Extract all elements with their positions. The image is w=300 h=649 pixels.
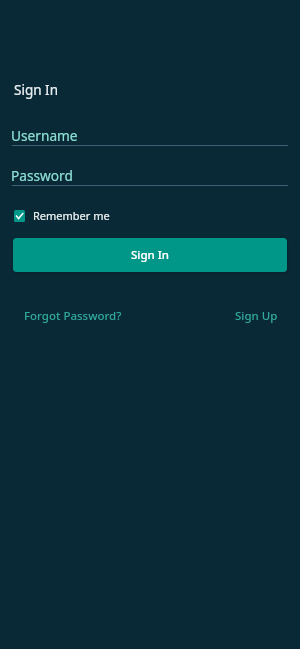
staticText: Sign In bbox=[131, 247, 170, 263]
staticText: Password bbox=[11, 166, 73, 185]
staticText: Remember me bbox=[33, 208, 110, 223]
button[interactable]: Sign Up bbox=[223, 304, 290, 328]
staticText: Forgot Password? bbox=[24, 308, 122, 324]
staticText: Sign In bbox=[14, 81, 58, 99]
staticText: Username bbox=[11, 126, 78, 145]
other: Remember me checkbox, checked bbox=[14, 210, 25, 222]
button[interactable]: Password bbox=[12, 165, 288, 186]
staticText: Sign Up bbox=[235, 308, 278, 324]
button[interactable]: Forgot Password? bbox=[12, 304, 134, 328]
button[interactable]: Remember me checkbox, checked bbox=[14, 208, 110, 223]
button[interactable]: Username bbox=[12, 125, 288, 146]
button[interactable]: Sign In bbox=[13, 238, 287, 272]
